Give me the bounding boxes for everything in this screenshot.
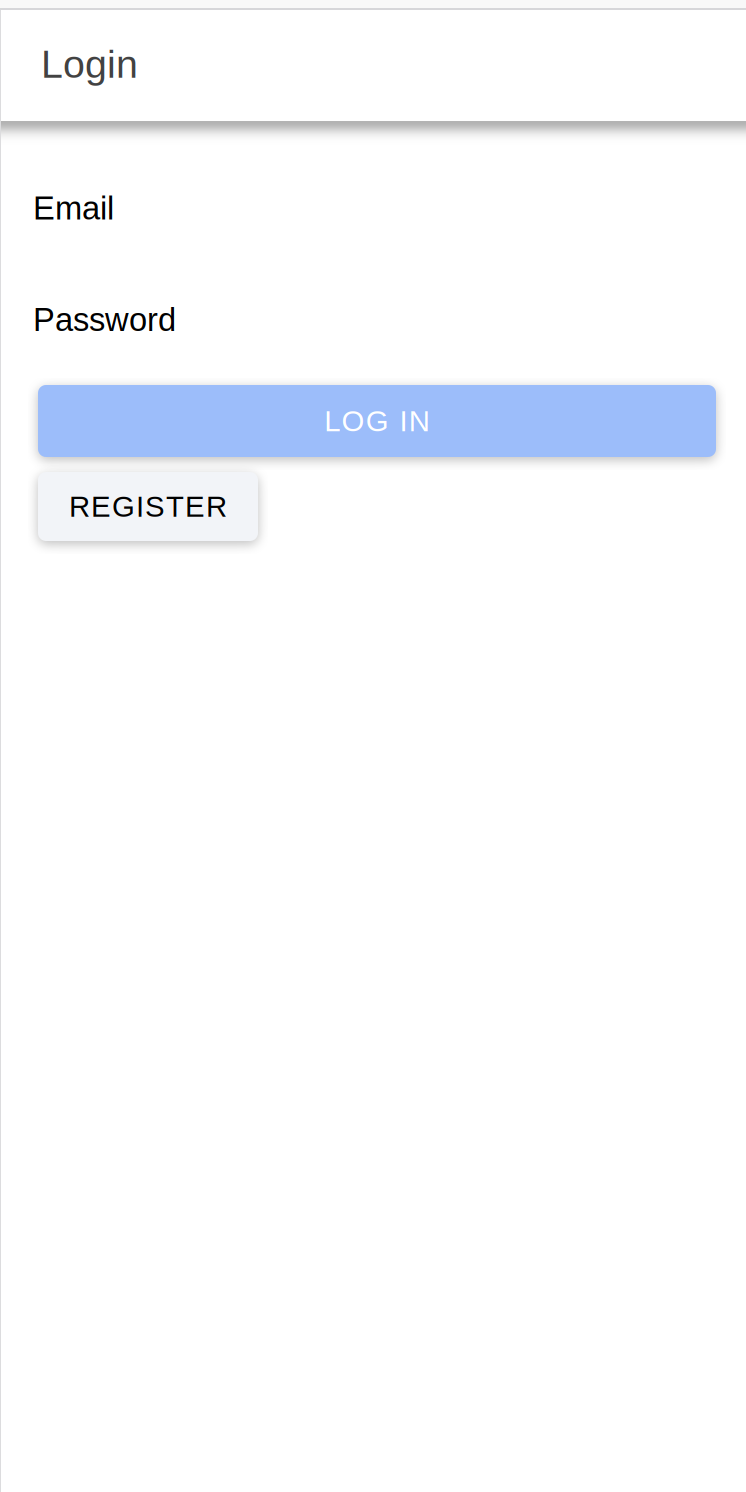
button[interactable]: LOG IN	[38, 385, 716, 457]
button[interactable]: REGISTER	[38, 472, 258, 541]
staticText: Login	[41, 42, 138, 86]
staticText: Email	[33, 190, 114, 226]
staticText: Password	[33, 301, 176, 338]
staticText: REGISTER	[69, 490, 227, 523]
staticText: LOG IN	[324, 405, 430, 437]
